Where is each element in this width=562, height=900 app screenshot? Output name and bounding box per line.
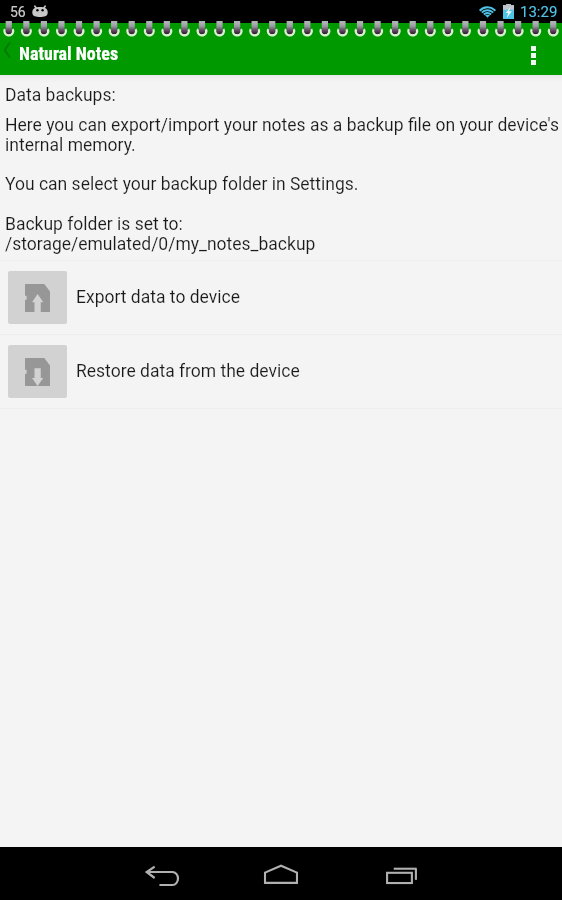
button[interactable]: More options [511, 23, 555, 75]
staticText: Backup folder is set to: /storage/emulat… [5, 214, 316, 254]
staticText: 56 [10, 4, 26, 20]
staticText: You can select your backup folder in Set… [5, 174, 359, 195]
staticText: Export data to device [76, 287, 240, 308]
staticText: 13:29 [520, 3, 558, 21]
button[interactable]: Restore data from the device [0, 335, 562, 408]
button[interactable]: Back [134, 849, 190, 900]
button[interactable]: Export data to device [0, 261, 562, 334]
staticText: Here you can export/import your notes as… [5, 115, 559, 155]
button[interactable]: Recent apps [373, 849, 429, 900]
staticText: Natural Notes [19, 43, 119, 64]
button[interactable]: Navigate up [0, 33, 14, 67]
button[interactable]: Home [253, 848, 309, 900]
staticText: Restore data from the device [76, 361, 300, 382]
staticText: Data backups: [5, 85, 116, 106]
